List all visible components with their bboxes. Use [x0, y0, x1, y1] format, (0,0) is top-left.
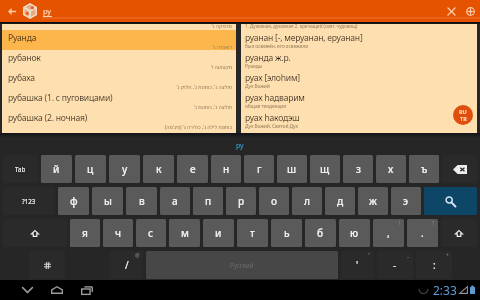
- button[interactable]: Tab: [3, 155, 38, 183]
- other: Search: [445, 196, 456, 207]
- button[interactable]: ч: [103, 219, 133, 247]
- button[interactable]: у: [109, 155, 140, 183]
- button[interactable]: ц: [75, 155, 106, 183]
- button[interactable]: ?: [407, 219, 438, 247]
- staticText: э: [403, 194, 409, 208]
- button[interactable]: н: [211, 155, 241, 183]
- staticText: й: [53, 162, 60, 176]
- staticText: 1. Духовная, духовная 2. кричащий (свят.…: [245, 23, 358, 29]
- button[interactable]: ш: [277, 155, 307, 183]
- button[interactable]: Shift: [3, 219, 67, 247]
- button[interactable]: й: [41, 155, 72, 183]
- staticText: руанан [-, меруанан, еруанан]: [245, 32, 363, 44]
- button[interactable]: о: [259, 187, 289, 215]
- button[interactable]: руах hакодэш: [245, 112, 477, 132]
- button[interactable]: ъ: [409, 155, 439, 183]
- button[interactable]: ж: [358, 187, 388, 215]
- button[interactable]: +: [416, 251, 452, 279]
- button[interactable]: Hide keyboard: [12, 280, 42, 300]
- button[interactable]: щ: [310, 155, 340, 183]
- button[interactable]: Switch language RU TR: [453, 105, 473, 125]
- button[interactable]: Voice search: [461, 0, 479, 22]
- other: Backspace: [453, 165, 467, 174]
- button[interactable]: м: [169, 219, 200, 247]
- button[interactable]: _: [377, 251, 413, 279]
- staticText: н: [223, 162, 230, 176]
- staticText: ц: [87, 162, 94, 176]
- staticText: г: [257, 162, 262, 176]
- button[interactable]: рубашка (1. с пуговицами): [2, 90, 236, 110]
- button[interactable]: ф: [58, 187, 89, 215]
- button[interactable]: т: [237, 219, 268, 247]
- button[interactable]: д: [325, 187, 355, 215]
- button[interactable]: и: [203, 219, 234, 247]
- staticText: Дух Божий, Святой Дух: [245, 123, 298, 130]
- staticText: руах hакодэш: [245, 112, 300, 124]
- button[interactable]: к: [143, 155, 174, 183]
- button[interactable]: ?123: [3, 187, 55, 215]
- staticText: ь: [284, 226, 290, 240]
- button[interactable]: руах hадварим: [245, 92, 477, 112]
- button[interactable]: р: [226, 187, 256, 215]
- button[interactable]: Clear search: [442, 0, 460, 22]
- staticText: Tab: [15, 165, 26, 173]
- button[interactable]: @: [110, 251, 143, 279]
- button[interactable]: Search: [424, 187, 477, 215]
- button[interactable]: руах [элоhим]: [245, 72, 477, 92]
- button[interactable]: Руанда: [2, 30, 236, 50]
- button[interactable]: Recent apps: [72, 280, 102, 300]
- button[interactable]: с: [136, 219, 166, 247]
- button[interactable]: рубанок: [2, 50, 236, 70]
- button[interactable]: х: [376, 155, 406, 183]
- button[interactable]: л: [292, 187, 322, 215]
- button[interactable]: я: [70, 219, 100, 247]
- staticText: @: [135, 252, 140, 259]
- staticText: у: [122, 162, 128, 176]
- button[interactable]: а: [160, 187, 190, 215]
- button[interactable]: ы: [92, 187, 123, 215]
- staticText: руах hадварим: [245, 92, 305, 104]
- staticText: _: [407, 252, 410, 259]
- button[interactable]: е: [177, 155, 208, 183]
- other: Keyboard settings: [44, 262, 51, 269]
- button[interactable]: в: [126, 187, 157, 215]
- staticText: +: [446, 252, 449, 259]
- staticText: о: [271, 194, 278, 208]
- button[interactable]: !: [373, 219, 404, 247]
- staticText: ,: [387, 226, 390, 240]
- staticText: חולצה נ', כותונת נ': [194, 104, 232, 111]
- staticText: ч: [115, 226, 122, 240]
- button[interactable]: руанда ж.р.: [245, 52, 477, 72]
- button[interactable]: ю: [339, 219, 370, 247]
- staticText: ": [368, 252, 371, 259]
- staticText: а: [172, 194, 178, 208]
- other: Shift: [31, 230, 39, 237]
- button[interactable]: рубашка (2. ночная): [2, 110, 236, 130]
- button[interactable]: э: [391, 187, 421, 215]
- staticText: д: [337, 194, 344, 208]
- button[interactable]: Keyboard settings: [29, 251, 65, 279]
- button[interactable]: з: [343, 155, 373, 183]
- button[interactable]: Backspace: [442, 155, 477, 183]
- staticText: рубашка (1. с пуговицами): [8, 92, 113, 104]
- button[interactable]: ь: [271, 219, 302, 247]
- button[interactable]: рубаха: [2, 70, 236, 90]
- button[interactable]: б: [305, 219, 336, 247]
- staticText: Русский: [230, 261, 254, 269]
- button[interactable]: Shift: [441, 219, 477, 247]
- staticText: ю: [350, 226, 359, 240]
- button[interactable]: руанан [-, меруанан, еруанан]: [245, 32, 477, 52]
- button[interactable]: Dictionary home: [21, 0, 39, 22]
- button[interactable]: г: [244, 155, 274, 183]
- button[interactable]: Back: [1, 0, 23, 22]
- staticText: Руанда: [8, 32, 37, 44]
- button[interactable]: ": [341, 251, 374, 279]
- staticText: .: [421, 226, 424, 240]
- button[interactable]: Home: [42, 280, 72, 300]
- button[interactable]: п: [193, 187, 223, 215]
- staticText: е: [190, 162, 196, 176]
